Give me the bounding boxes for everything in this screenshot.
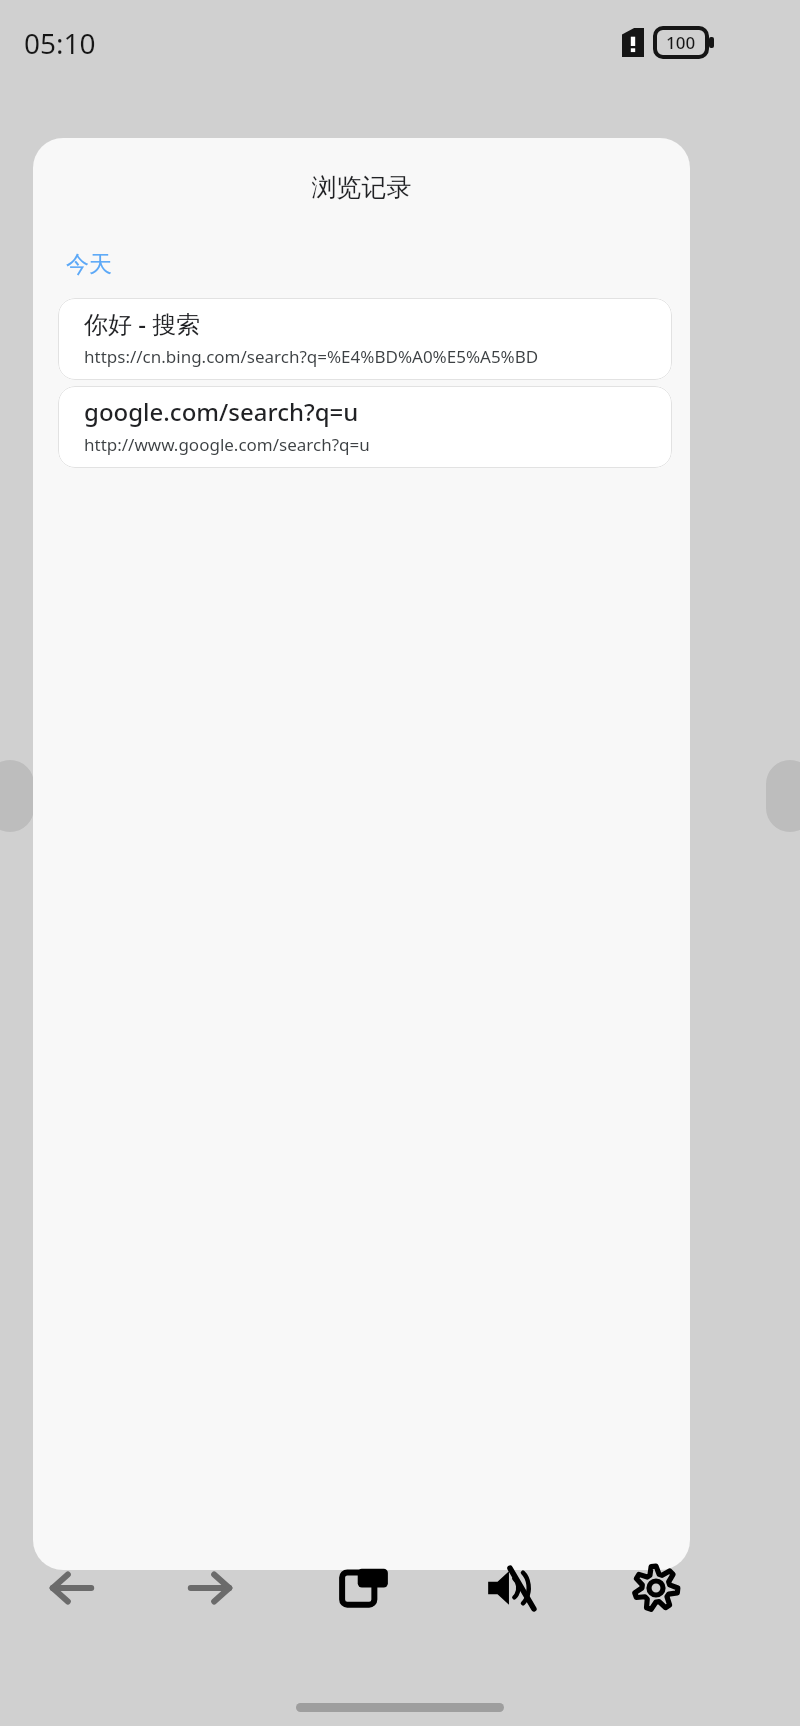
button[interactable]: google.com/search?q=u bbox=[58, 386, 672, 468]
button[interactable]: Tabs bbox=[329, 1552, 401, 1624]
staticText: 你好 - 搜索 bbox=[84, 307, 201, 340]
staticText: http://www.google.com/search?q=u bbox=[84, 433, 370, 456]
staticText: 今天 bbox=[66, 250, 112, 279]
staticText: 浏览记录 bbox=[33, 172, 690, 203]
button[interactable]: Forward bbox=[174, 1552, 246, 1624]
button[interactable]: Back bbox=[36, 1552, 108, 1624]
staticText: 05:10 bbox=[24, 24, 96, 62]
button[interactable]: 你好 - 搜索 bbox=[58, 298, 672, 380]
button[interactable]: Settings bbox=[620, 1552, 692, 1624]
staticText: google.com/search?q=u bbox=[84, 395, 359, 428]
button[interactable]: Mute bbox=[474, 1552, 546, 1624]
staticText: 100 bbox=[666, 31, 696, 54]
staticText: https://cn.bing.com/search?q=%E4%BD%A0%E… bbox=[84, 345, 539, 368]
